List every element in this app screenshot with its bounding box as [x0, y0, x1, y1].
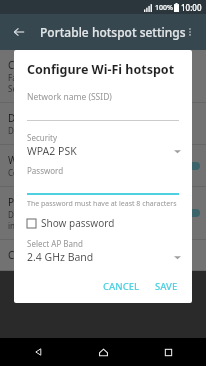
staticText: The password must have at least 8 charac…: [27, 199, 177, 209]
staticText: SAVE: [155, 280, 178, 293]
button[interactable]: Back: [4, 17, 34, 47]
staticText: Portable hotspot settings: [40, 24, 186, 40]
staticText: Fast Hotspot: [8, 72, 56, 83]
staticText: Power saving: [8, 195, 71, 209]
button[interactable]: Show password: [14, 215, 121, 231]
staticText: Secured with WPA2 PSK: [8, 83, 97, 94]
button[interactable]: 2.4 GHz Band: [14, 250, 192, 264]
staticText: Show password: [41, 216, 115, 230]
staticText: Password: [27, 165, 64, 176]
staticText: Network name (SSID): [27, 91, 112, 103]
button[interactable]: Back: [26, 340, 50, 364]
staticText: 2.4 GHz Band: [27, 250, 94, 264]
staticText: inactive for 5 minutes: [8, 220, 90, 231]
button[interactable]: WPA2 PSK: [14, 144, 192, 158]
staticText: CANCEL: [103, 280, 140, 293]
staticText: Configure: [8, 248, 55, 262]
staticText: Disable hotspot when: [8, 209, 90, 220]
staticText: Wi-Fi sharing: [8, 153, 70, 167]
staticText: Data limit reached: [8, 125, 77, 136]
button[interactable]: CANCEL: [97, 277, 146, 296]
button[interactable]: SAVE: [149, 277, 184, 296]
staticText: 100%: [155, 3, 173, 13]
button[interactable]: Home: [91, 340, 115, 364]
button[interactable]: More options: [176, 18, 204, 46]
staticText: Configure Wi-Fi hotspot: [27, 61, 175, 78]
staticText: Configure Wi-Fi hotspot: [8, 58, 119, 72]
button[interactable]: Recents: [156, 340, 180, 364]
staticText: WPA2 PSK: [27, 144, 77, 158]
staticText: Security: [27, 132, 58, 143]
staticText: Data usage: [8, 111, 62, 125]
staticText: Connected devices: 0: [8, 167, 87, 178]
staticText: Select AP Band: [27, 238, 83, 249]
staticText: 10:00: [181, 2, 202, 13]
